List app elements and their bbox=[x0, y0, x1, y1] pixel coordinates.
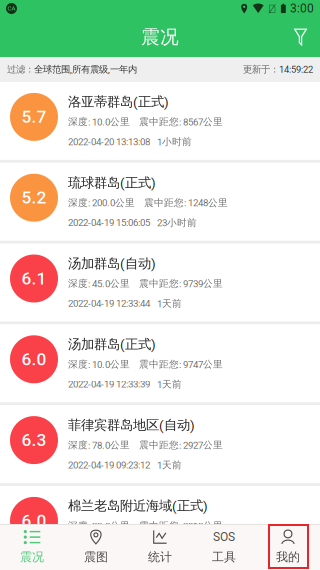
staticText: 5.7 bbox=[21, 107, 46, 127]
staticText: 6.1 bbox=[21, 268, 46, 289]
staticText: 全球范围,所有震级,一年内 bbox=[34, 64, 137, 75]
staticText: 14:59:22 bbox=[279, 64, 313, 75]
staticText: 2022-04-19 12:33:44 bbox=[68, 298, 150, 309]
staticText: 菲律宾群岛地区(自动) bbox=[68, 417, 195, 433]
button[interactable]: SOS bbox=[192, 524, 256, 570]
staticText: 棉兰老岛附近海域(正式) bbox=[68, 497, 208, 514]
staticText: 统计 bbox=[148, 549, 172, 564]
button[interactable]: 统计 bbox=[128, 524, 192, 570]
staticText: 6.3 bbox=[21, 430, 46, 450]
button[interactable]: 6.1 bbox=[0, 244, 320, 324]
staticText: 深度: 78.0公里 bbox=[68, 439, 130, 451]
button[interactable]: 我的 bbox=[256, 524, 320, 570]
staticText: 1天前 bbox=[157, 297, 182, 310]
staticText: 工具 bbox=[212, 549, 236, 564]
staticText: 深度: 10.0公里 bbox=[68, 116, 130, 128]
staticText: 更新于： bbox=[243, 64, 279, 75]
staticText: 2022-04-19 09:22:00 bbox=[68, 540, 150, 551]
staticText: 深度: 45.0公里 bbox=[68, 277, 130, 290]
staticText: 震况 bbox=[20, 549, 44, 564]
staticText: 震中距您: 9739公里 bbox=[139, 277, 223, 290]
staticText: 震中距您: 8567公里 bbox=[139, 116, 223, 128]
button[interactable]: 6.0 bbox=[0, 486, 320, 567]
staticText: 2022-04-19 09:23:12 bbox=[68, 459, 150, 471]
staticText: 2022-04-19 12:33:39 bbox=[68, 379, 150, 390]
staticText: 深度: 10.0公里 bbox=[68, 358, 130, 370]
staticText: 6.0 bbox=[21, 349, 46, 369]
staticText: 2022-04-19 15:06:05 bbox=[68, 217, 150, 228]
staticText: 汤加群岛(正式) bbox=[68, 336, 156, 353]
staticText: 深度: 200.0公里 bbox=[68, 197, 135, 209]
staticText: 1天前 bbox=[157, 459, 182, 471]
staticText: 深度: 20.0公里 bbox=[68, 520, 130, 532]
staticText: 23小时前 bbox=[157, 217, 197, 229]
staticText: 1天前 bbox=[157, 540, 182, 552]
staticText: 3:00 bbox=[290, 1, 314, 16]
button[interactable]: 筛选 bbox=[281, 17, 320, 57]
staticText: 1小时前 bbox=[157, 136, 192, 148]
staticText: 洛亚蒂群岛(正式) bbox=[68, 93, 169, 110]
button[interactable]: 6.0 bbox=[0, 324, 320, 405]
button[interactable]: 5.2 bbox=[0, 163, 320, 244]
staticText: 震中距您: 9747公里 bbox=[139, 358, 223, 370]
staticText: CA bbox=[7, 5, 15, 12]
staticText: 1天前 bbox=[157, 378, 182, 390]
button[interactable]: 震图 bbox=[64, 524, 128, 570]
staticText: 震况 bbox=[141, 25, 179, 49]
staticText: 震中距您: 2910公里 bbox=[139, 520, 223, 532]
staticText: 震中距您: 1248公里 bbox=[144, 197, 228, 209]
staticText: 琉球群岛(正式) bbox=[68, 174, 156, 191]
button[interactable]: 5.7 bbox=[0, 82, 320, 163]
staticText: 震中距您: 2927公里 bbox=[139, 439, 223, 451]
staticText: 汤加群岛(自动) bbox=[68, 255, 156, 272]
staticText: SOS bbox=[213, 530, 235, 544]
staticText: 震图 bbox=[84, 549, 108, 564]
staticText: 我的 bbox=[276, 549, 300, 564]
staticText: 5.2 bbox=[21, 187, 46, 208]
staticText: 6.0 bbox=[21, 511, 46, 531]
staticText: 2022-04-20 13:13:08 bbox=[68, 136, 150, 147]
button[interactable]: 震况 bbox=[0, 524, 64, 570]
button[interactable]: 6.3 bbox=[0, 405, 320, 486]
staticText: 过滤： bbox=[7, 64, 34, 75]
